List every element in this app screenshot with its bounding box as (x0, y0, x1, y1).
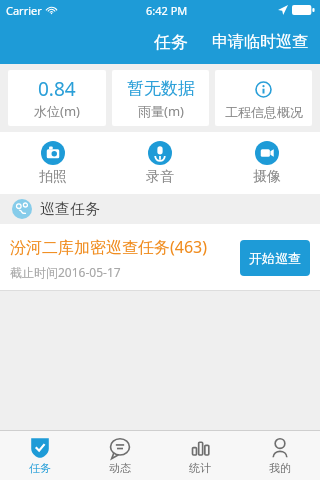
button[interactable]: 工程信息概况 (215, 70, 312, 126)
staticText: 汾河二库加密巡查任务(463) (10, 236, 208, 258)
staticText: 开始巡查 (249, 250, 301, 266)
button[interactable]: 任务 (144, 26, 198, 59)
staticText: 申请临时巡查 (212, 32, 308, 52)
button[interactable]: 录音 (106, 132, 213, 194)
button[interactable]: 拍照 (0, 132, 106, 194)
button[interactable]: 汾河二库加密巡查任务(463) (0, 224, 320, 291)
staticText: 任务 (29, 461, 51, 475)
staticText: 雨量(m) (138, 102, 184, 120)
button[interactable]: 统计 (160, 431, 240, 480)
staticText: 暂无数据 (127, 78, 195, 99)
other: 动态 (109, 437, 131, 459)
staticText: 统计 (189, 461, 211, 475)
staticText: 拍照 (39, 168, 67, 186)
other: 拍照 (41, 141, 65, 165)
other: 摄像 (255, 141, 279, 165)
other: 我的 (269, 437, 291, 459)
button[interactable]: 开始巡查 (240, 240, 310, 276)
button[interactable]: 动态 (80, 431, 160, 480)
staticText: 工程信息概况 (225, 104, 303, 120)
staticText: 动态 (109, 461, 131, 475)
other: 录音 (148, 141, 172, 165)
button[interactable]: 我的 (240, 431, 320, 480)
other: 统计 (189, 437, 211, 459)
button[interactable]: 0.84 (8, 70, 106, 126)
button[interactable]: 摄像 (213, 132, 320, 194)
staticText: 水位(m) (34, 102, 80, 120)
button[interactable]: 申请临时巡查 (208, 26, 312, 58)
staticText: 摄像 (253, 168, 281, 186)
staticText: 任务 (154, 32, 188, 53)
button[interactable]: 任务 (0, 431, 80, 480)
staticText: 巡查任务 (40, 200, 100, 219)
button[interactable]: 暂无数据 (112, 70, 209, 126)
staticText: 0.84 (38, 76, 76, 100)
staticText: 我的 (269, 461, 291, 475)
staticText: 6:42 PM (146, 3, 188, 18)
staticText: Carrier (6, 3, 42, 18)
staticText: 截止时间2016-05-17 (10, 264, 121, 280)
staticText: 录音 (146, 168, 174, 186)
other: 任务 (29, 437, 51, 459)
